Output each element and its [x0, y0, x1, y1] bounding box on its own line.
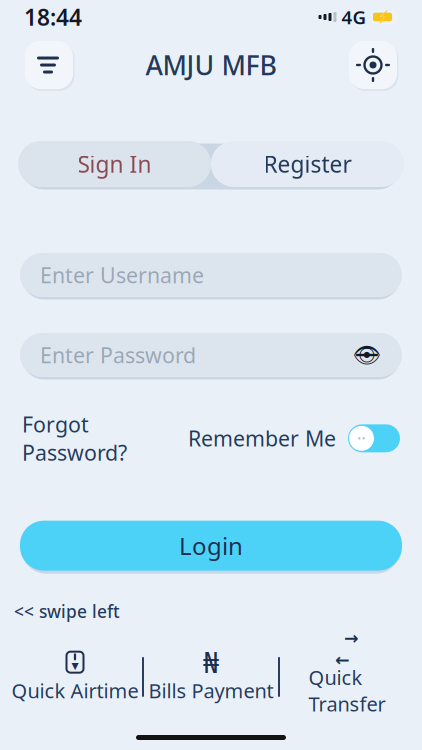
staticText: 18:44 [24, 2, 82, 32]
button[interactable]: ▼ [8, 646, 142, 708]
button[interactable]: Locate branch [346, 38, 400, 92]
staticText: Enter Username [40, 261, 204, 289]
staticText: 👁 [352, 342, 381, 368]
staticText: Register [263, 149, 351, 179]
staticText: Enter Password [40, 341, 196, 369]
staticText: ⚡ [376, 10, 391, 24]
button[interactable]: Forgot Password? [22, 404, 127, 473]
button[interactable]: ₦ [144, 646, 278, 708]
button[interactable]: Menu [22, 38, 76, 92]
staticText: Sign In [77, 149, 151, 179]
button[interactable]: Sign In [18, 141, 211, 187]
staticText: Remember Me [188, 424, 336, 452]
button[interactable]: Login [20, 521, 402, 571]
staticText: Quick Airtime [11, 677, 138, 704]
button[interactable]: Register [211, 141, 404, 187]
button[interactable]: Remember Me [348, 424, 400, 452]
staticText: Bills Payment [148, 677, 273, 704]
staticText: ₦ [203, 644, 219, 681]
staticText: ▼ [71, 660, 78, 671]
staticText: Forgot Password? [22, 410, 127, 467]
button[interactable]: → [280, 633, 414, 721]
staticText: AMJU MFB [145, 47, 276, 83]
staticText: Login [179, 530, 243, 562]
button[interactable]: Show password [352, 342, 382, 368]
staticText: << swipe left [14, 600, 120, 623]
staticText: ← [335, 650, 350, 670]
staticText: 4G [341, 5, 366, 29]
staticText: → [344, 628, 359, 648]
staticText: Quick Transfer [308, 664, 385, 717]
